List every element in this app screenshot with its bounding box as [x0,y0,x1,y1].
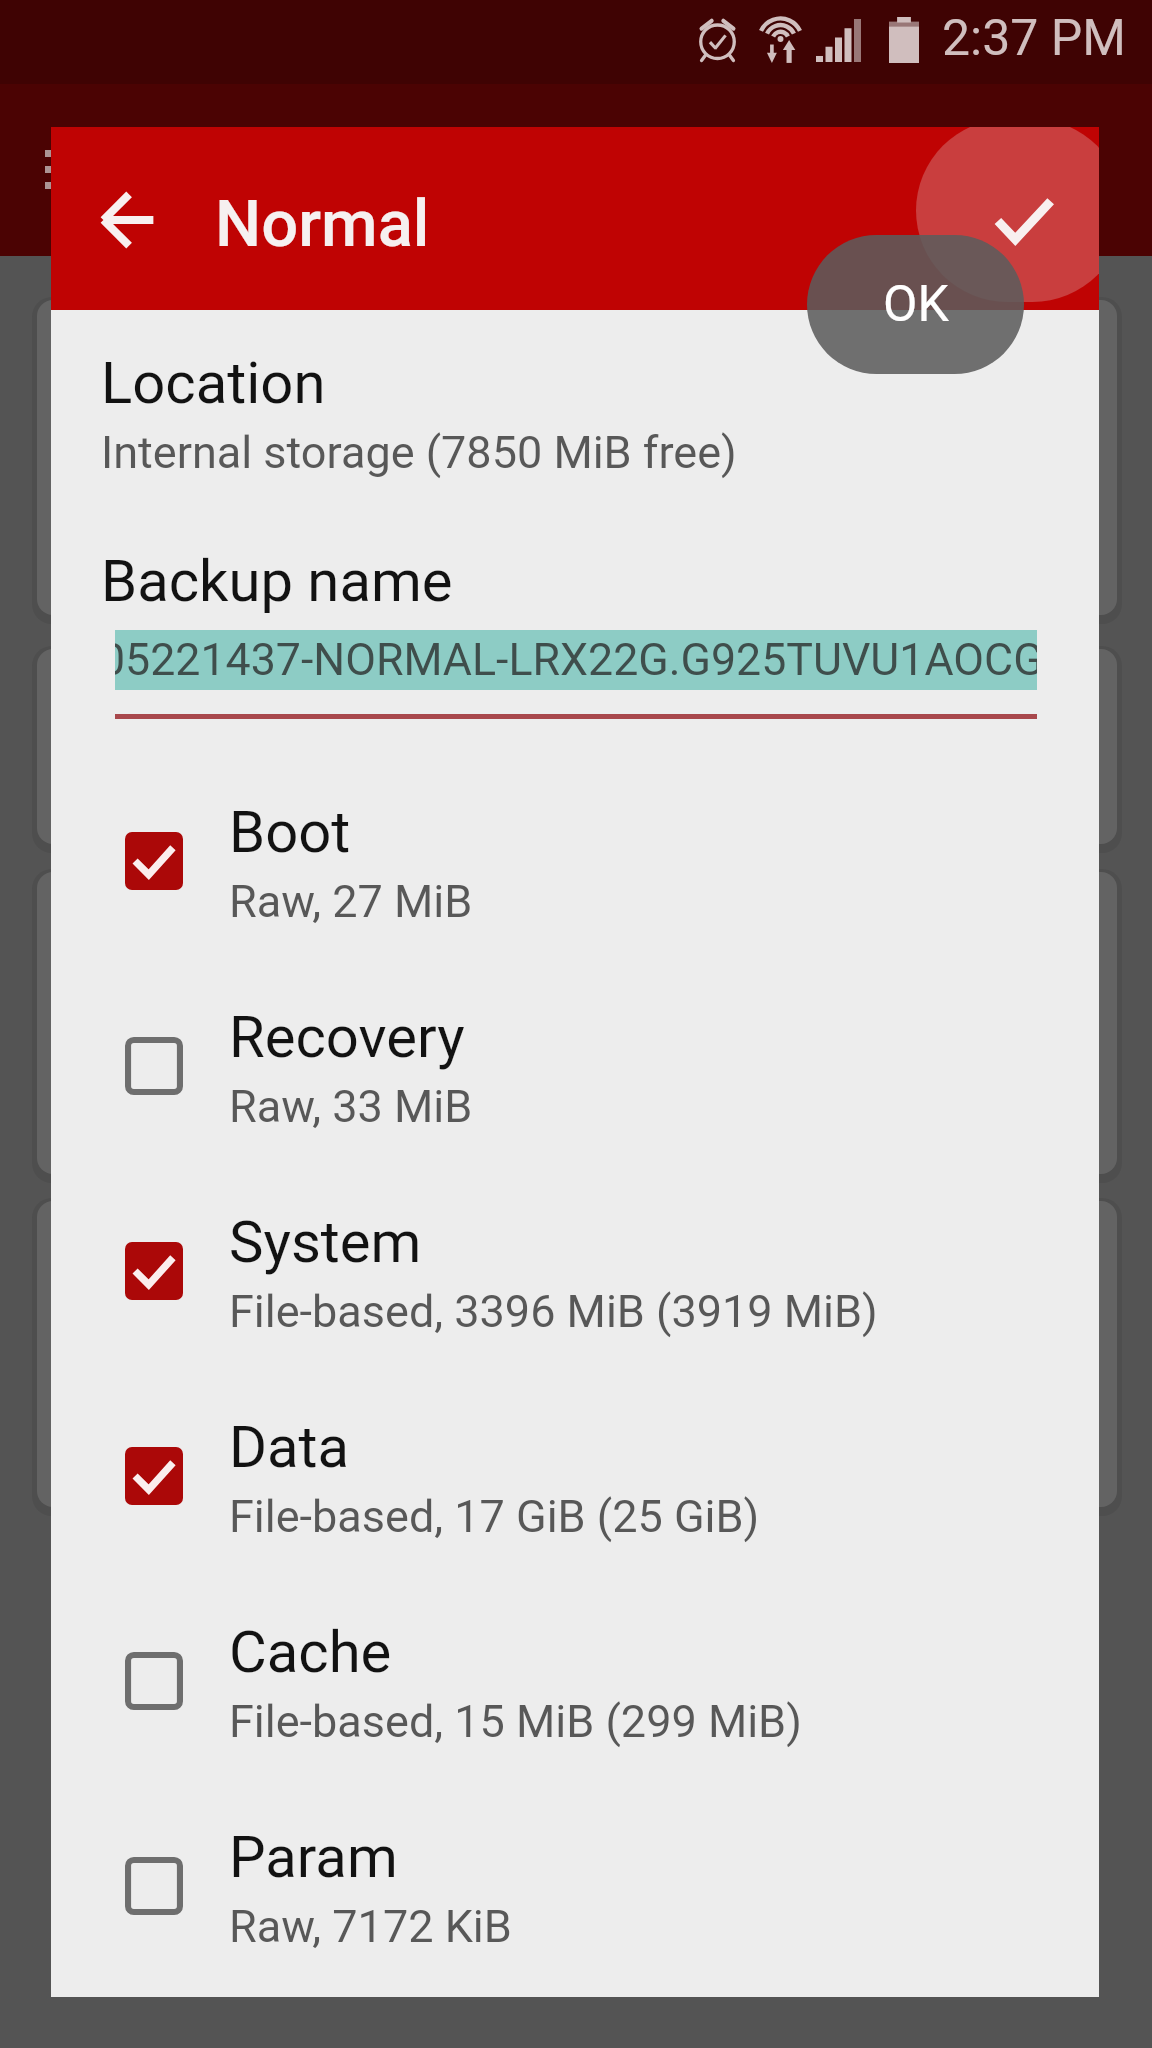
staticText: Location [101,349,326,417]
staticText: 05221437-NORMAL-LRX22G.G925TUVU1AOCG [115,634,1037,686]
staticText: File-based, 17 GiB (25 GiB) [229,1490,760,1543]
staticText: System [229,1208,422,1276]
staticText: Cache [229,1618,392,1686]
staticText: Raw, 33 MiB [229,1080,473,1133]
button[interactable]: Boot [51,759,1099,963]
staticText: Recovery [229,1003,465,1071]
staticText: Internal storage (7850 MiB free) [101,426,737,479]
button[interactable]: Param [51,1784,1099,1988]
button[interactable]: Data [51,1374,1099,1578]
staticText: Data [229,1413,350,1481]
button[interactable]: Navigate up [63,155,193,285]
staticText: OK [883,275,949,334]
staticText: File-based, 15 MiB (299 MiB) [229,1695,802,1748]
button[interactable]: Recovery [51,964,1099,1168]
staticText: 2:37 PM [942,9,1127,68]
staticText: Param [229,1823,398,1891]
staticText: Boot [229,798,351,866]
button[interactable]: System [51,1169,1099,1373]
button[interactable]: Cache [51,1579,1099,1783]
staticText: Raw, 7172 KiB [229,1900,512,1953]
staticText: Raw, 27 MiB [229,875,473,928]
button[interactable]: Accept [959,156,1089,286]
button[interactable]: 05221437-NORMAL-LRX22G.G925TUVU1AOCG [115,630,1037,690]
staticText: Normal [215,186,430,262]
staticText: File-based, 3396 MiB (3919 MiB) [229,1285,878,1338]
staticText: Backup name [101,547,453,615]
